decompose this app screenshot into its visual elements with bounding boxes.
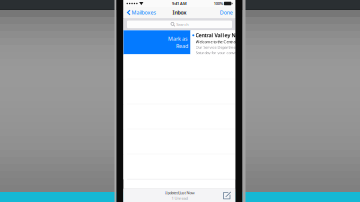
staticText: Updated Just Now: [164, 190, 194, 195]
staticText: 9:41 AM: [172, 1, 187, 6]
staticText: 100%: [214, 1, 223, 6]
staticText: 1 Unread: [171, 196, 187, 201]
staticText: Mark as: [168, 35, 188, 42]
staticText: Search: [176, 22, 188, 27]
staticText: Read: [176, 42, 188, 50]
staticText: Saturday for your conve: [195, 50, 236, 55]
button[interactable]: Search: [127, 21, 232, 28]
staticText: Inbox: [172, 9, 186, 16]
staticText: Mailboxes: [131, 9, 156, 16]
staticText: Central Valley Nissan: [195, 32, 249, 39]
staticText: Our Service Department: [195, 44, 238, 50]
button[interactable]: Done: [218, 7, 235, 18]
button[interactable]: Mark as: [123, 30, 190, 54]
button[interactable]: Compose: [221, 190, 233, 201]
button[interactable]: Mailboxes: [123, 7, 158, 18]
staticText: Done: [220, 9, 233, 16]
staticText: Welcome to the Central: [195, 39, 236, 44]
